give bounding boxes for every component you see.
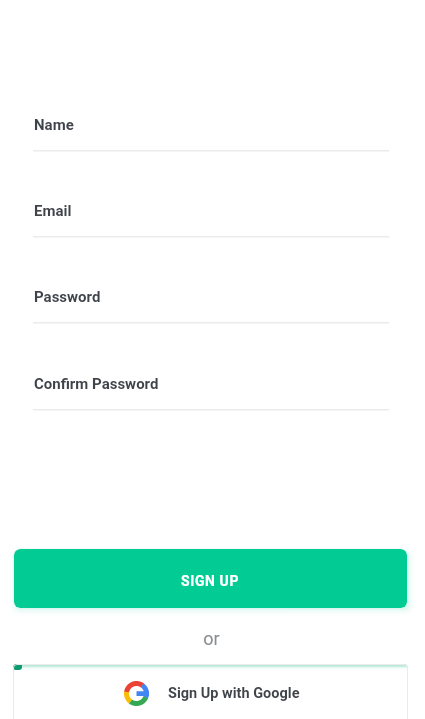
button[interactable]: Name [33,108,389,152]
staticText: Password [34,288,101,306]
button[interactable]: SIGN UP [14,549,407,608]
button[interactable]: Google [13,664,408,719]
staticText: or [0,628,424,649]
staticText: Sign Up with Google [168,685,300,702]
button[interactable]: Confirm Password [33,367,389,411]
button[interactable]: Email [33,194,389,238]
staticText: Name [34,116,74,134]
staticText: SIGN UP [181,573,240,589]
button[interactable]: Password [33,280,389,324]
staticText: Confirm Password [34,375,159,393]
other: Google [124,681,149,706]
staticText: Email [34,202,72,220]
